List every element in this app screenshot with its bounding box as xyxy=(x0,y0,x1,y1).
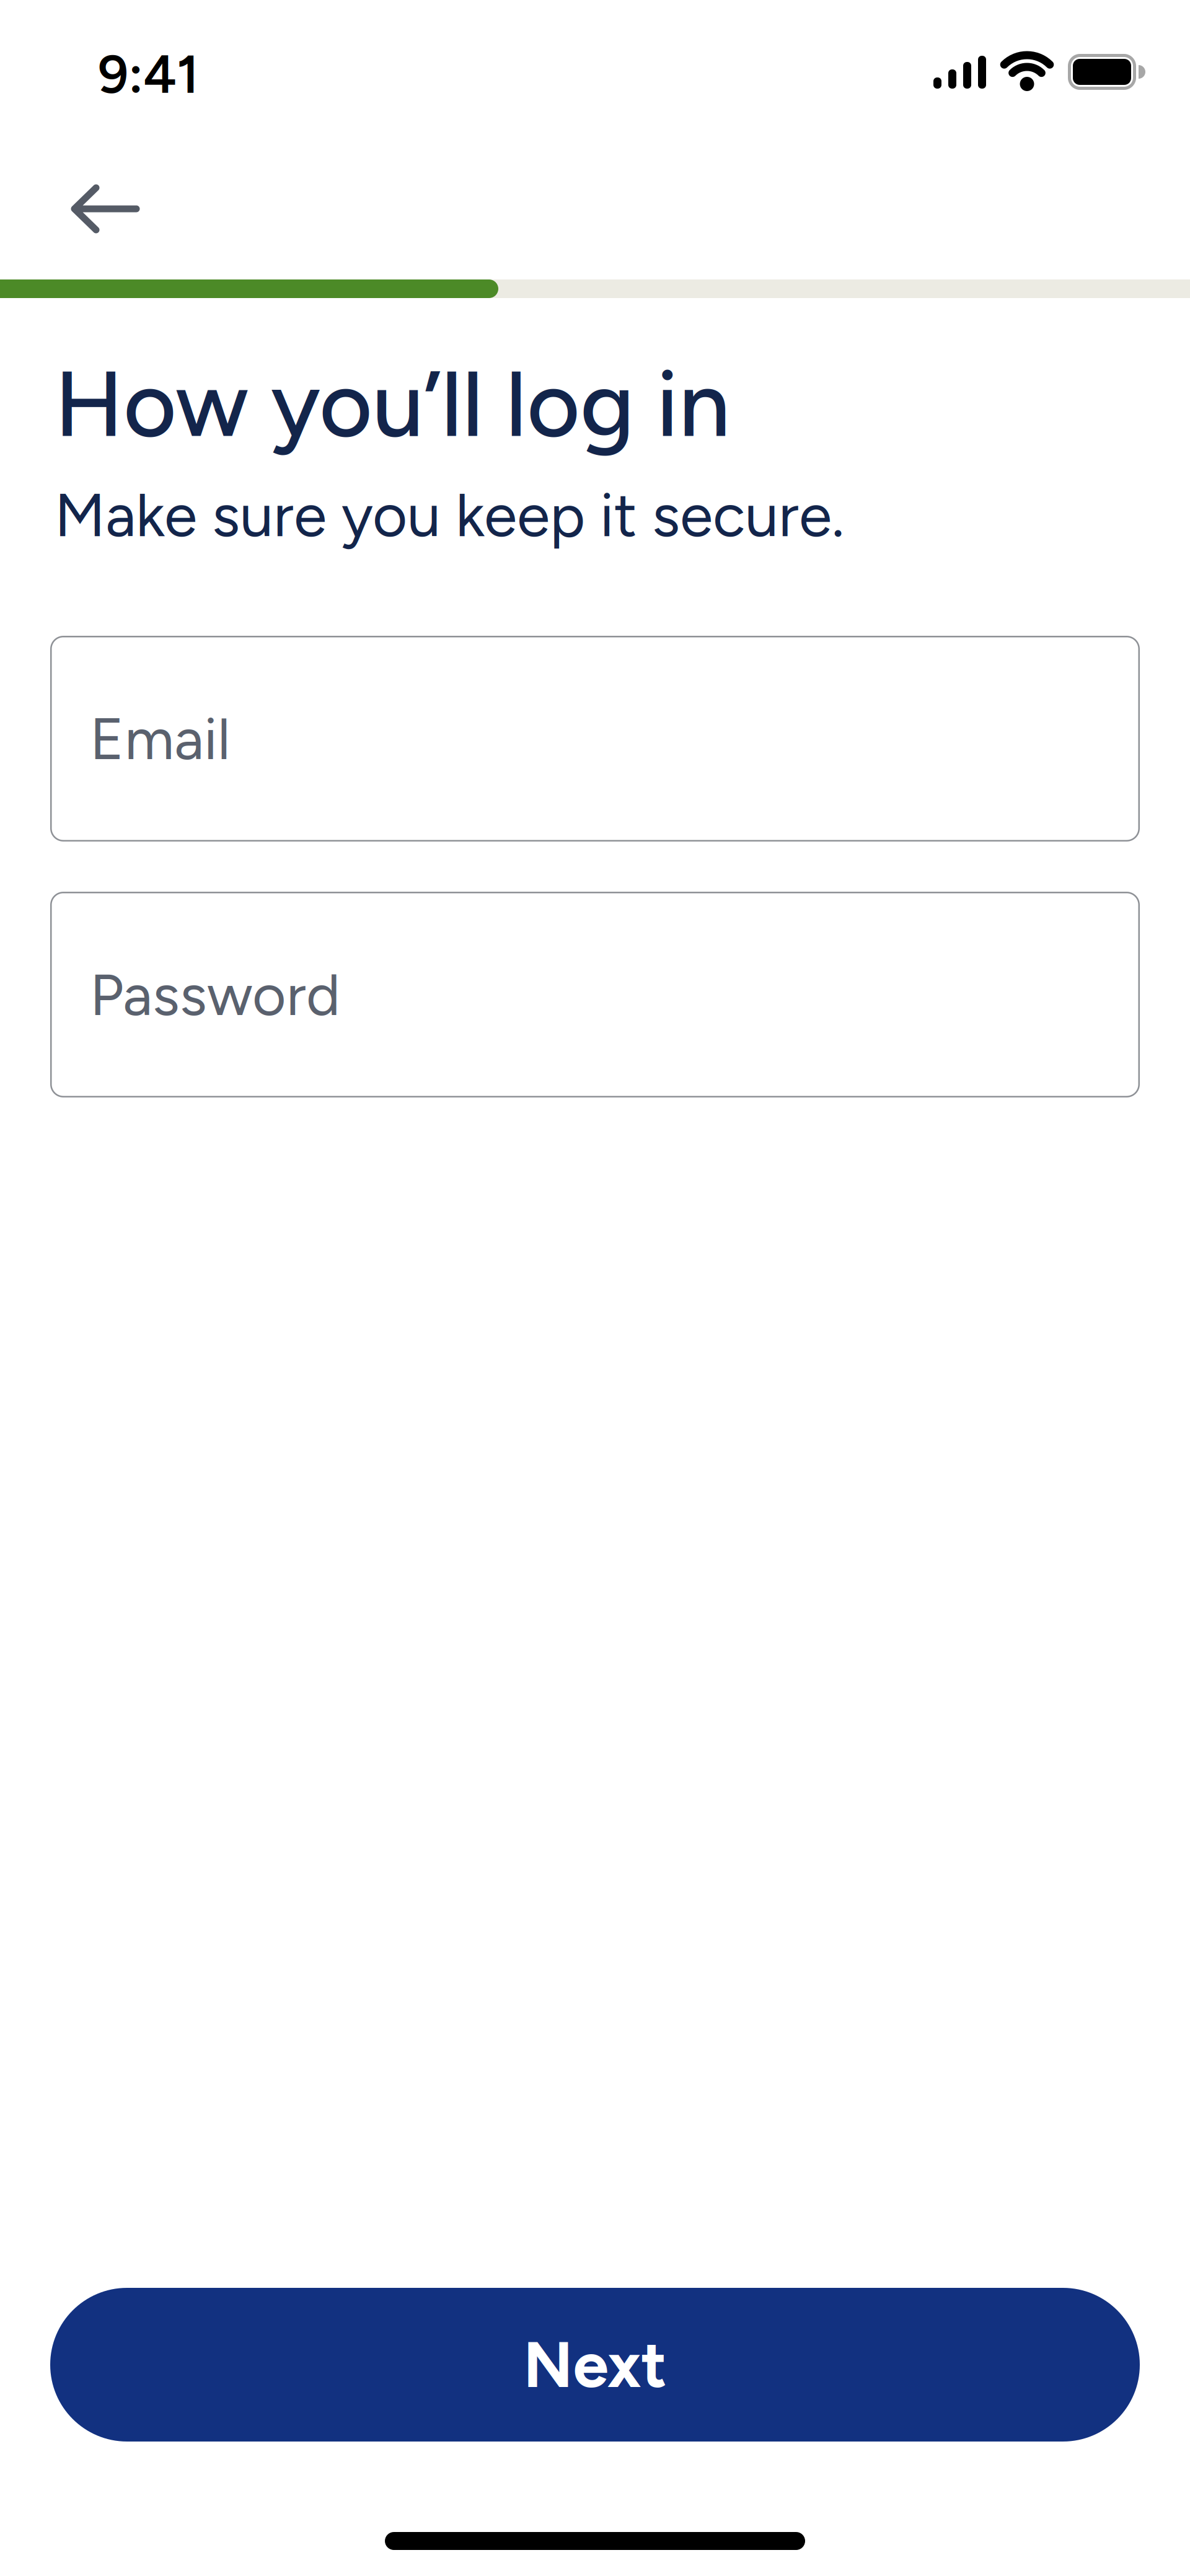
staticText: Password xyxy=(90,960,340,1030)
staticText: 9:41 xyxy=(98,42,199,106)
button[interactable] xyxy=(50,172,149,246)
staticText: How you’ll log in xyxy=(55,349,730,459)
button[interactable]: Password xyxy=(50,892,1140,1097)
staticText: Email xyxy=(90,704,231,774)
button[interactable]: Email xyxy=(50,636,1140,842)
staticText: Make sure you keep it secure. xyxy=(55,479,844,551)
button[interactable]: Next xyxy=(50,2288,1140,2442)
staticText: Next xyxy=(523,2326,667,2403)
